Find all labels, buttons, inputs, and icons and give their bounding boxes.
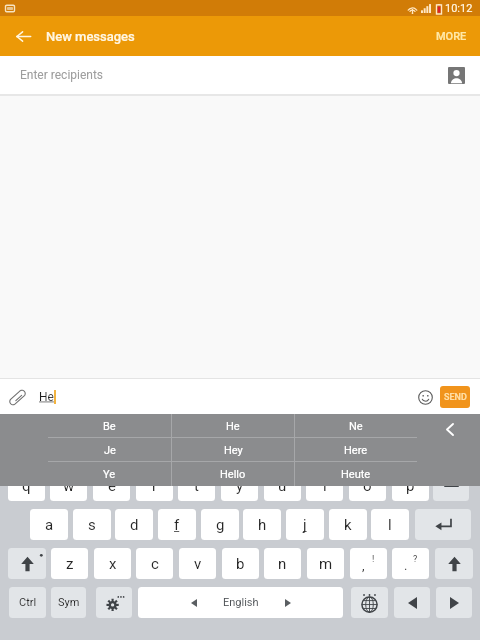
staticText: l <box>388 516 392 534</box>
staticText: He <box>39 390 54 404</box>
button[interactable]: Add recipient from contacts <box>444 63 468 87</box>
button[interactable]: Backspace <box>433 470 469 501</box>
button[interactable]: Space, English <box>138 587 343 618</box>
staticText: Je <box>104 444 116 457</box>
staticText: Enter recipients <box>20 68 104 82</box>
button[interactable]: h <box>243 509 281 540</box>
button[interactable]: a <box>30 509 68 540</box>
staticText: Sym <box>58 596 80 609</box>
staticText: MORE <box>436 30 467 43</box>
button[interactable]: Move cursor right <box>436 587 472 618</box>
button[interactable]: k <box>329 509 367 540</box>
button[interactable]: Ye <box>48 462 171 486</box>
button[interactable]: g <box>201 509 239 540</box>
staticText: Hey <box>224 444 243 457</box>
button[interactable]: Period and question mark <box>392 548 429 579</box>
button[interactable]: n <box>264 548 301 579</box>
staticText: y <box>236 477 244 495</box>
staticText: s <box>88 516 96 534</box>
staticText: t <box>194 477 199 495</box>
staticText: h <box>258 516 267 534</box>
button[interactable]: f <box>158 509 196 540</box>
staticText: f <box>174 516 180 534</box>
button[interactable]: m <box>307 548 344 579</box>
staticText: i <box>323 477 327 495</box>
button[interactable]: He <box>172 414 294 438</box>
button[interactable]: Be <box>48 414 171 438</box>
button[interactable]: e <box>93 470 130 501</box>
staticText: 10:12 <box>445 2 473 15</box>
button[interactable]: x <box>94 548 131 579</box>
staticText: Here <box>344 444 368 457</box>
button[interactable]: o <box>349 470 386 501</box>
staticText: j <box>303 516 307 534</box>
button[interactable]: MORE <box>423 16 480 56</box>
staticText: g <box>216 516 225 534</box>
staticText: SEND <box>444 392 467 403</box>
button[interactable]: Caps lock <box>435 548 473 579</box>
staticText: Ye <box>103 468 116 481</box>
staticText: English <box>223 596 259 609</box>
staticText: v <box>194 555 202 573</box>
staticText: w <box>63 477 75 495</box>
staticText: z <box>66 555 74 573</box>
staticText: k <box>344 516 352 534</box>
button[interactable]: t <box>178 470 215 501</box>
button[interactable]: Hey <box>172 438 294 462</box>
button[interactable]: Heute <box>295 462 417 486</box>
button[interactable]: Attach file <box>3 383 31 411</box>
button[interactable]: SEND <box>440 386 470 408</box>
button[interactable]: Je <box>48 438 171 462</box>
button[interactable]: v <box>179 548 216 579</box>
button[interactable]: Navigate up <box>0 16 46 56</box>
button[interactable]: b <box>222 548 259 579</box>
button[interactable]: Keyboard settings <box>96 587 132 618</box>
button[interactable]: Ctrl <box>9 587 46 618</box>
button[interactable]: c <box>136 548 173 579</box>
staticText: u <box>278 477 287 495</box>
button[interactable]: Shift <box>8 548 46 579</box>
button[interactable]: Sym <box>51 587 86 618</box>
button[interactable]: Here <box>295 438 417 462</box>
staticText: ! <box>372 554 375 565</box>
button[interactable]: Change input language <box>351 587 388 618</box>
staticText: c <box>151 555 159 573</box>
staticText: , <box>362 558 365 573</box>
button[interactable]: q <box>8 470 45 501</box>
button[interactable]: w <box>50 470 87 501</box>
staticText: New messages <box>46 29 135 44</box>
button[interactable]: y <box>221 470 258 501</box>
staticText: Ctrl <box>19 596 37 609</box>
button[interactable]: p <box>392 470 429 501</box>
button[interactable]: Ne <box>295 414 417 438</box>
staticText: . <box>404 558 408 573</box>
staticText: Be <box>103 420 116 433</box>
staticText: x <box>109 555 117 573</box>
button[interactable]: u <box>264 470 301 501</box>
button[interactable]: Comma and exclamation mark <box>350 548 387 579</box>
button[interactable]: s <box>73 509 111 540</box>
staticText: a <box>45 516 54 534</box>
button[interactable]: l <box>371 509 409 540</box>
button[interactable]: Hello <box>172 462 294 486</box>
button[interactable]: z <box>51 548 88 579</box>
button[interactable]: d <box>115 509 153 540</box>
button[interactable]: i <box>306 470 343 501</box>
staticText: m <box>319 555 333 573</box>
button[interactable]: r <box>136 470 173 501</box>
staticText: n <box>278 555 287 573</box>
staticText: ? <box>413 554 418 565</box>
staticText: d <box>130 516 139 534</box>
button[interactable]: Insert emoji <box>412 384 438 410</box>
staticText: Hello <box>220 468 246 481</box>
button[interactable]: Collapse suggestions <box>440 419 460 439</box>
staticText: b <box>236 555 245 573</box>
staticText: Ne <box>349 420 363 433</box>
button[interactable]: j <box>286 509 324 540</box>
staticText: Heute <box>341 468 371 481</box>
staticText: He <box>226 420 240 433</box>
staticText: o <box>363 477 372 495</box>
staticText: r <box>152 477 158 495</box>
button[interactable]: Move cursor left <box>394 587 430 618</box>
button[interactable]: Enter <box>415 509 471 540</box>
